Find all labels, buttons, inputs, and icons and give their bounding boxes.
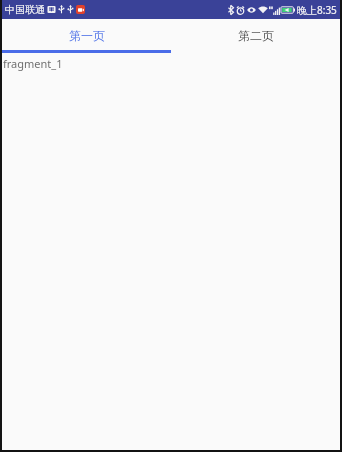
button[interactable]: 第一页 xyxy=(2,19,171,53)
staticText: 中国联通 xyxy=(5,3,45,16)
staticText: fragment_1 xyxy=(3,56,63,71)
staticText: 第一页 xyxy=(69,28,105,43)
staticText: 晚上8:35 xyxy=(297,3,337,17)
button[interactable]: 第二页 xyxy=(171,19,340,53)
staticText: 第二页 xyxy=(238,28,274,43)
